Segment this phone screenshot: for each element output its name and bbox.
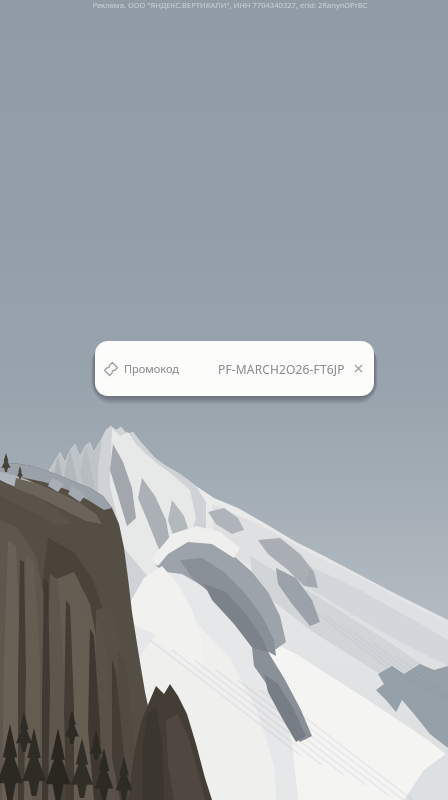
staticText: PF-MARCH2O26-FT6JP — [218, 361, 345, 377]
button[interactable]: Промокод — [95, 341, 374, 396]
staticText: Реклама. ООО "ЯНДЕКС.ВЕРТИКАЛИ", ИНН 770… — [12, 0, 448, 10]
staticText: Промокод — [124, 361, 179, 376]
button[interactable]: Close — [352, 362, 365, 375]
